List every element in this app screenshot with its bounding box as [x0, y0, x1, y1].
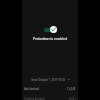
staticText: Protection is enabled	[22, 36, 78, 41]
staticText: 13,248	[67, 87, 76, 91]
button[interactable]: Ads blocked	[22, 85, 78, 93]
button[interactable]: Trackers blocked	[22, 95, 78, 100]
button[interactable]: Since October 1, 2019 10:02	[22, 77, 78, 82]
staticText: Trackers blocked	[24, 97, 45, 100]
staticText: Since October 1, 2019 10:02	[31, 78, 65, 82]
staticText: Ads blocked	[24, 87, 39, 91]
staticText: 9,021	[69, 97, 76, 100]
button[interactable]: Protection toggle	[22, 26, 78, 33]
